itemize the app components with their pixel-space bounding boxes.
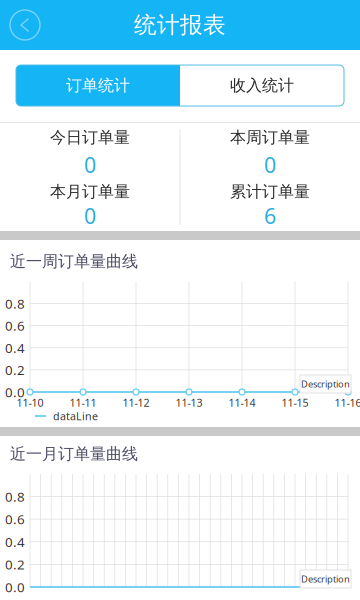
staticText: 近一周订单量曲线 [10, 252, 138, 271]
staticText: 0.2 [5, 361, 25, 379]
staticText: 11-13 [175, 395, 202, 410]
staticText: 0.0 [5, 578, 25, 596]
staticText: 0.4 [5, 339, 25, 357]
staticText: 0.0 [5, 383, 25, 401]
button[interactable]: Back [0, 0, 50, 50]
staticText: 0.4 [5, 533, 25, 551]
staticText: 收入统计 [230, 76, 294, 95]
staticText: 累计订单量 [230, 182, 310, 202]
staticText: 订单统计 [66, 76, 130, 95]
staticText: 0.8 [5, 295, 25, 312]
staticText: 11-12 [122, 395, 149, 410]
staticText: Description [301, 573, 350, 585]
staticText: 0.6 [5, 510, 25, 528]
staticText: 0 [84, 151, 96, 179]
staticText: 今日订单量 [50, 128, 130, 147]
staticText: 11-16 [334, 395, 360, 410]
staticText: 6 [264, 201, 276, 230]
staticText: 0.8 [5, 488, 25, 505]
staticText: 11-14 [228, 395, 255, 410]
staticText: 11-11 [69, 395, 96, 410]
button[interactable]: 收入统计 [180, 65, 344, 106]
staticText: 0 [264, 151, 276, 179]
staticText: Description [301, 378, 350, 390]
staticText: 0.2 [5, 555, 25, 573]
staticText: 0.6 [5, 317, 25, 334]
staticText: 本月订单量 [50, 182, 130, 202]
staticText: dataLine [53, 409, 98, 423]
staticText: 0 [84, 201, 96, 230]
button[interactable]: 订单统计 [16, 65, 180, 106]
staticText: 11-10 [16, 395, 43, 410]
staticText: 近一月订单量曲线 [10, 444, 138, 464]
staticText: 统计报表 [134, 11, 226, 39]
staticText: 11-15 [281, 395, 308, 410]
staticText: 本周订单量 [230, 128, 310, 147]
